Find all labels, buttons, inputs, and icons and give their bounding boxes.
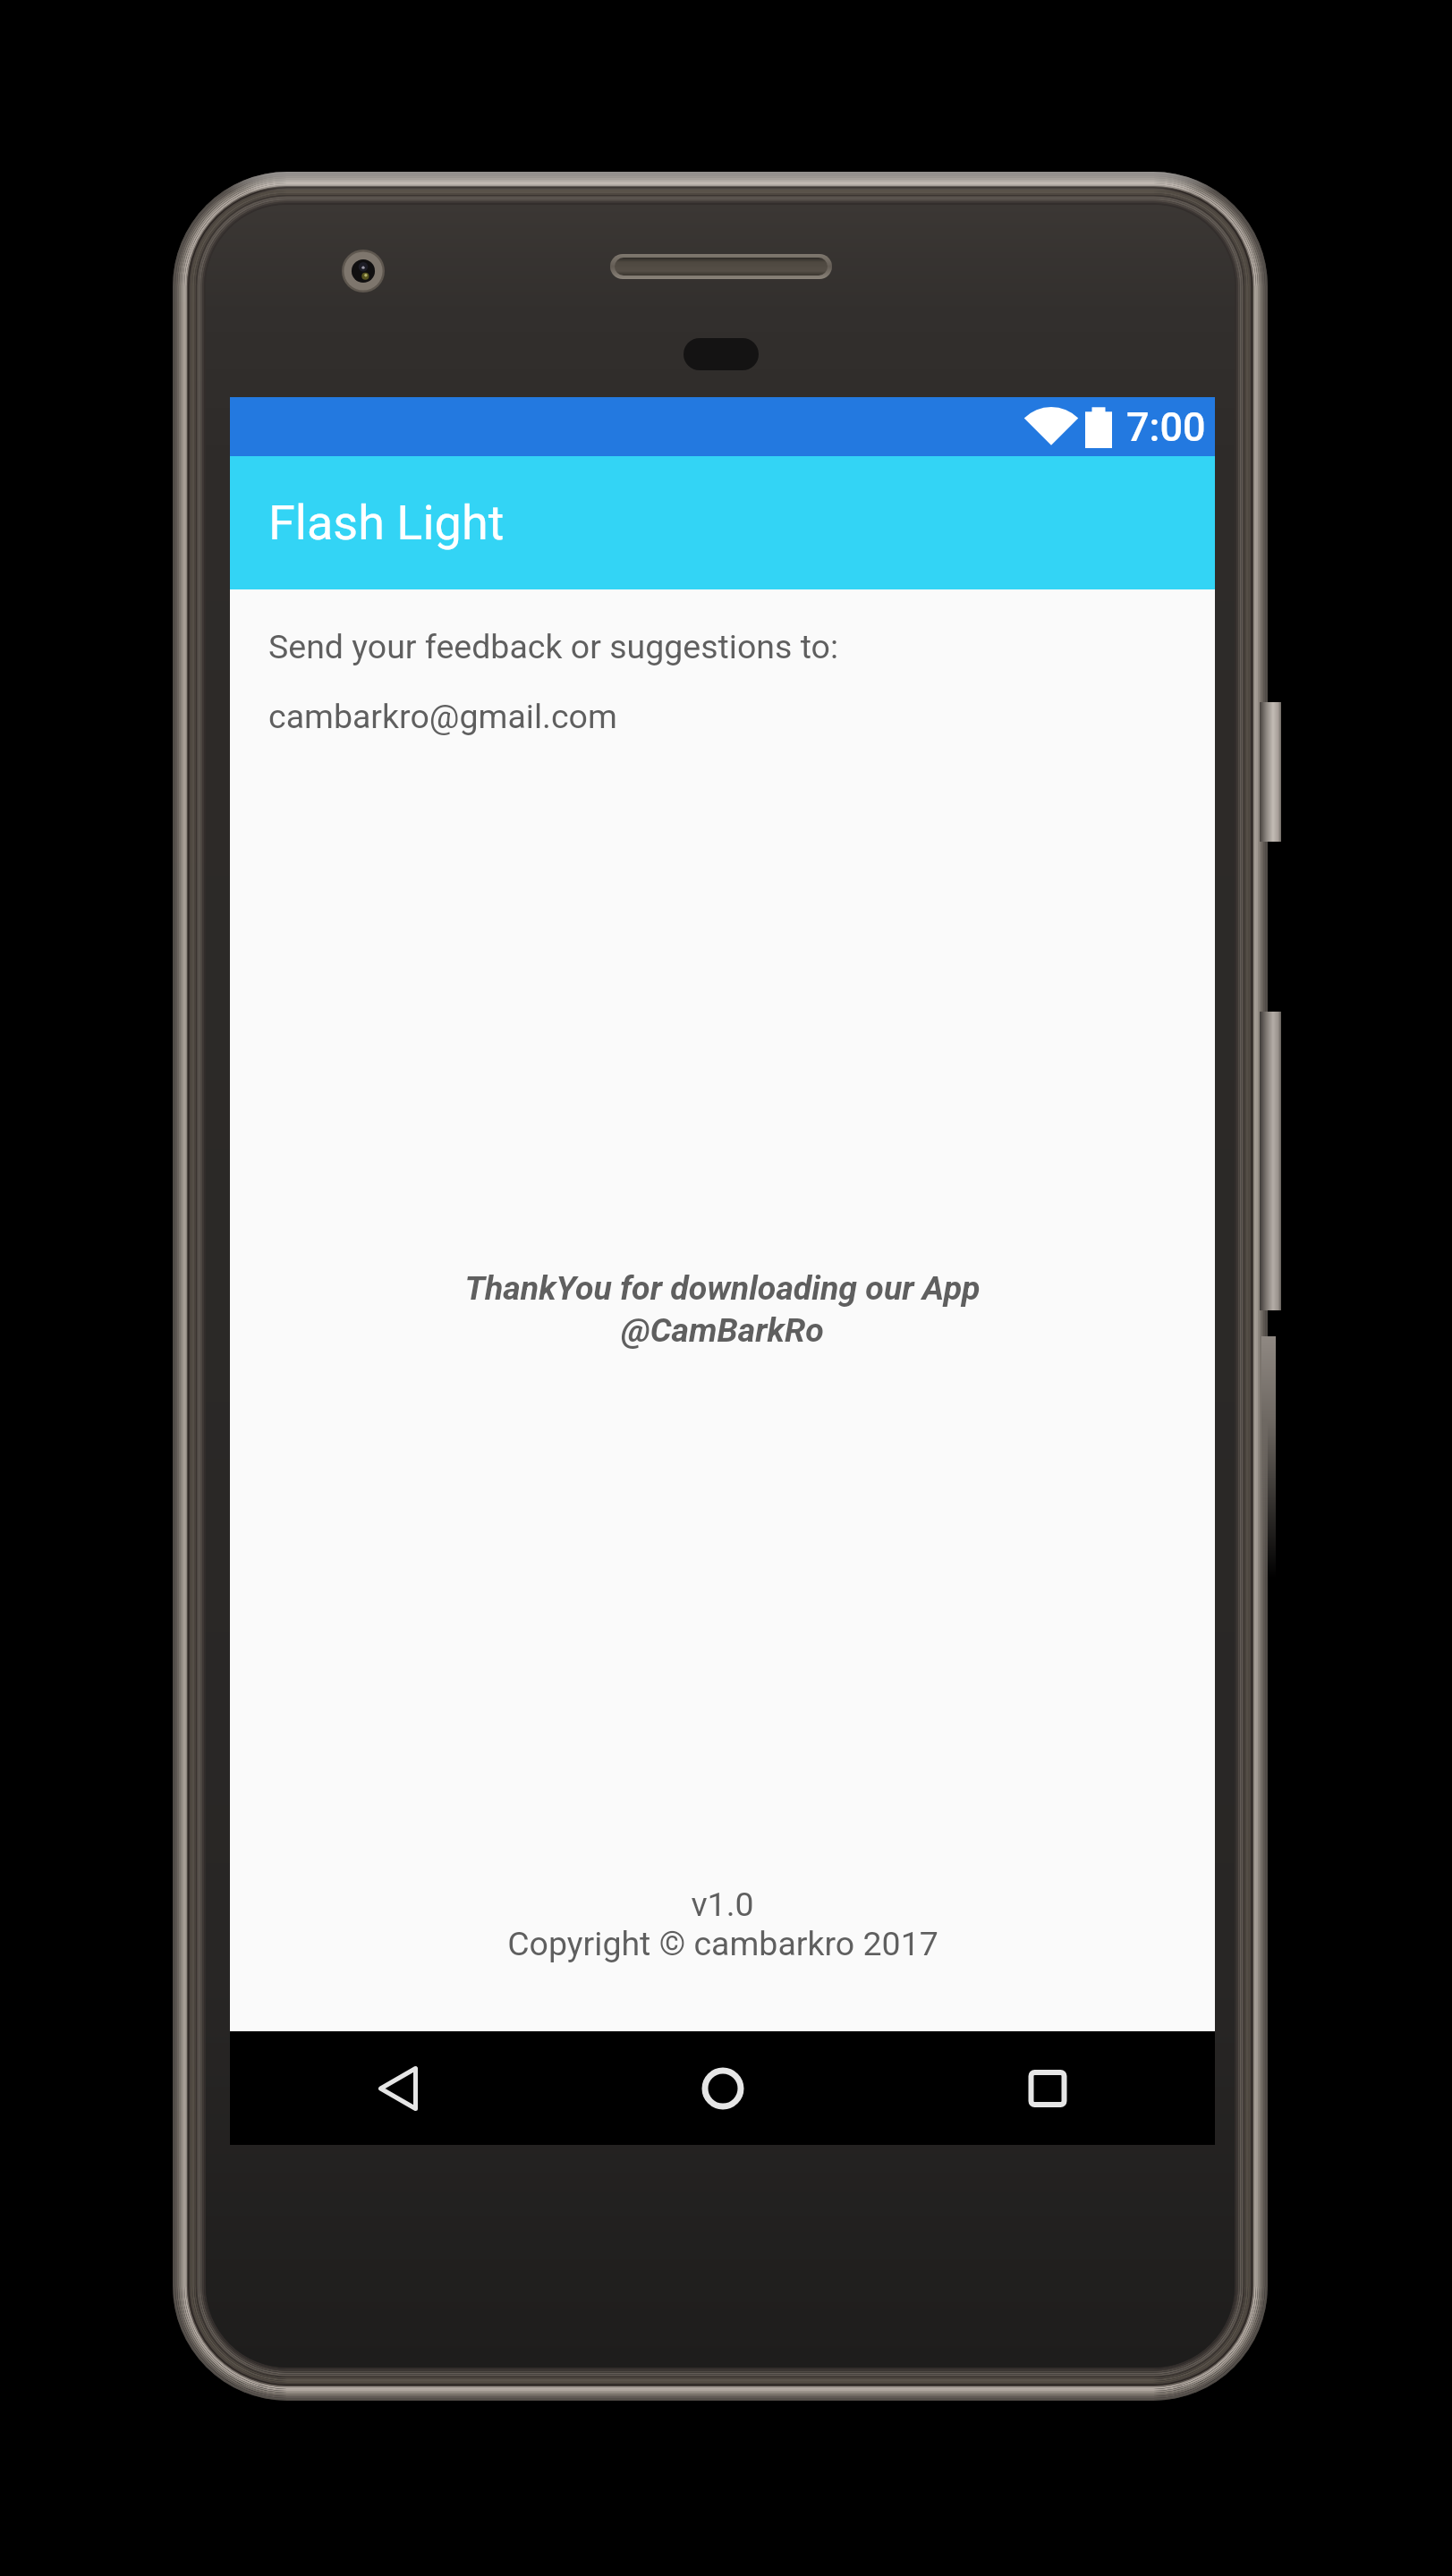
button[interactable]: cambarkro@gmail.com	[268, 697, 617, 736]
button[interactable]: Back	[344, 2031, 452, 2145]
staticText: Flash Light	[268, 495, 505, 551]
staticText: ThankYou for downloading our App @CamBar…	[230, 1268, 1215, 1350]
button[interactable]: Flash Light	[230, 456, 1215, 589]
staticText: 7:00	[1126, 403, 1206, 451]
button[interactable]: Recent apps	[994, 2031, 1101, 2145]
staticText: Send your feedback or suggestions to:	[268, 627, 839, 666]
staticText: Copyright © cambarkro 2017	[507, 1924, 938, 1963]
button[interactable]: Home	[669, 2031, 777, 2145]
staticText: v1.0	[691, 1885, 754, 1924]
